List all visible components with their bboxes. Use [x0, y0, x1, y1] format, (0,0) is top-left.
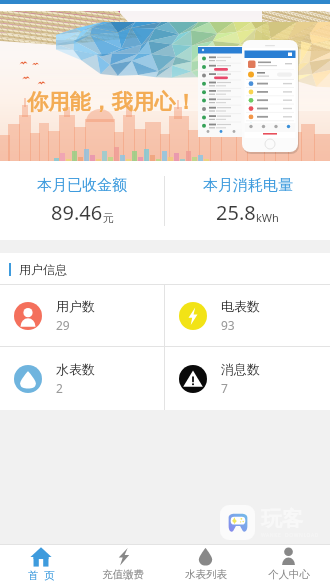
staticText: 本月已收金额: [37, 176, 127, 195]
staticText: 消息数: [221, 361, 260, 377]
staticText: 水表数: [56, 361, 95, 377]
staticText: 电表数: [221, 298, 260, 314]
staticText: 7: [221, 380, 228, 396]
staticText: 89.46: [51, 199, 103, 226]
staticText: 个人中心: [268, 568, 310, 581]
staticText: 29: [56, 317, 70, 333]
button[interactable]: 用户数: [0, 285, 164, 346]
button[interactable]: 本月消耗电量: [165, 176, 330, 226]
button[interactable]: 个人中心: [247, 545, 330, 586]
staticText: 元: [103, 211, 114, 225]
staticText: 用户信息: [19, 262, 67, 277]
button[interactable]: 电表数: [165, 285, 330, 346]
staticText: 用户数: [56, 298, 95, 314]
staticText: 首 页: [28, 568, 55, 582]
staticText: 你用能，我用心！: [27, 89, 197, 115]
staticText: 本月消耗电量: [203, 176, 293, 195]
staticText: 25.8: [216, 199, 256, 226]
staticText: kWh: [256, 210, 279, 225]
staticText: 充值缴费: [102, 568, 144, 581]
button[interactable]: 水表数: [0, 347, 164, 410]
button[interactable]: 本月已收金额: [0, 176, 164, 226]
staticText: 水表列表: [185, 568, 227, 581]
button[interactable]: 首 页: [0, 545, 82, 586]
button[interactable]: 充值缴费: [82, 545, 164, 586]
staticText: 玩客: [261, 506, 303, 532]
button[interactable]: 消息数: [165, 347, 330, 410]
staticText: 93: [221, 317, 235, 333]
staticText: 2: [56, 380, 63, 396]
button[interactable]: 水表列表: [164, 545, 247, 586]
